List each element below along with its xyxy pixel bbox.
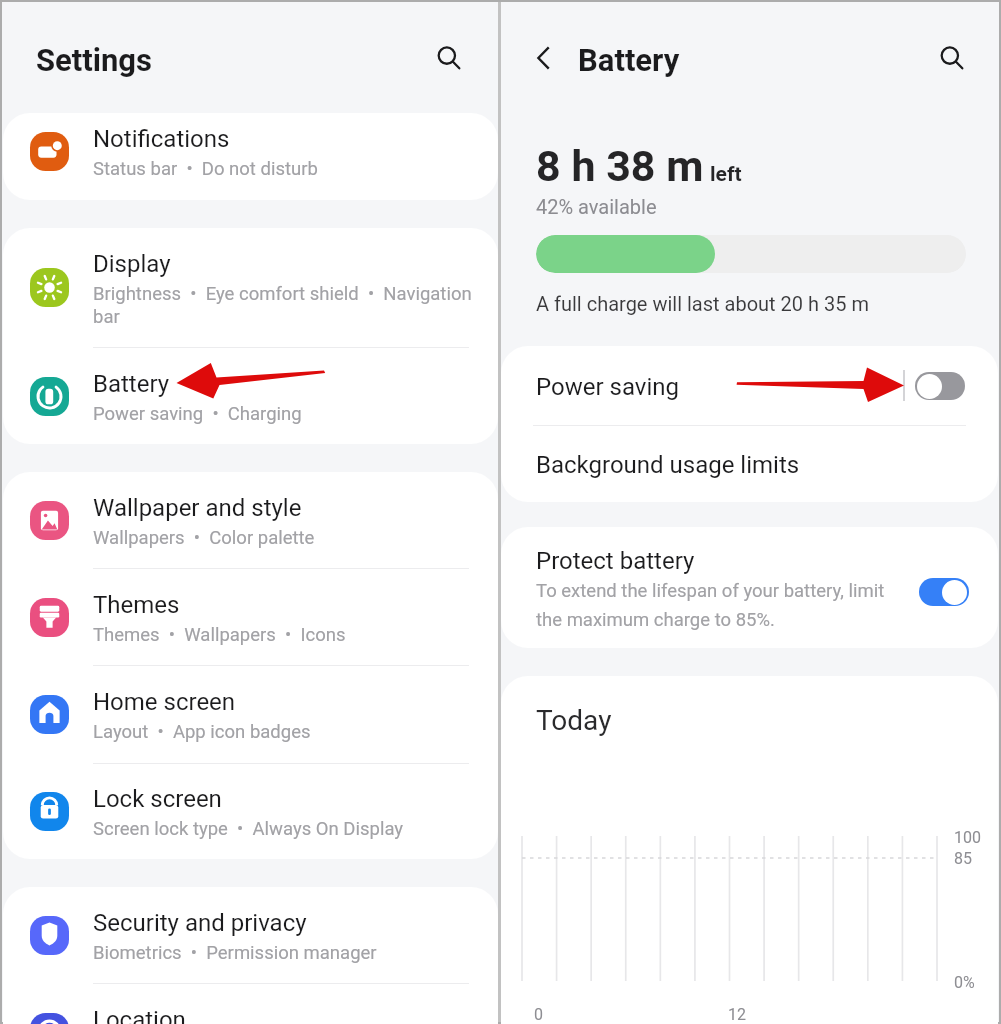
button[interactable]: Battery — [3, 348, 498, 444]
button[interactable]: Location — [3, 984, 498, 1024]
staticText: Notifications — [93, 125, 230, 153]
staticText: Display — [93, 250, 171, 278]
staticText: Themes — [93, 591, 180, 619]
button[interactable]: Wallpaper and style — [3, 472, 498, 568]
staticText: A full charge will last about 20 h 35 m — [536, 292, 870, 315]
staticText: 0% — [954, 973, 975, 992]
staticText: 85 — [954, 849, 972, 868]
staticText: Security and privacy — [93, 909, 307, 937]
staticText: Layout • App icon badges — [93, 721, 311, 743]
button[interactable]: Back — [521, 35, 567, 81]
staticText: Power saving — [536, 373, 679, 401]
button[interactable]: Home screen — [3, 666, 498, 763]
button[interactable]: Search — [929, 35, 975, 81]
staticText: Background usage limits — [536, 451, 800, 479]
staticText: Screen lock type • Always On Display — [93, 818, 404, 840]
staticText: left — [710, 162, 742, 187]
staticText: Location — [93, 1006, 186, 1024]
staticText: Status bar • Do not disturb — [93, 158, 318, 180]
staticText: Battery — [578, 42, 680, 78]
button[interactable]: Search — [426, 35, 472, 81]
button[interactable]: Background usage limits — [501, 426, 998, 502]
staticText: Wallpapers • Color palette — [93, 527, 315, 549]
button[interactable]: Turn off — [919, 578, 969, 606]
button[interactable]: Power saving — [501, 346, 998, 425]
staticText: Protect battery — [536, 547, 695, 575]
staticText: 42% available — [536, 195, 657, 218]
staticText: 100 — [954, 828, 981, 847]
button[interactable]: Lock screen — [3, 764, 498, 859]
staticText: Wallpaper and style — [93, 494, 302, 522]
button[interactable]: Security and privacy — [3, 887, 498, 983]
staticText: To extend the lifespan of your battery, … — [536, 580, 885, 630]
button[interactable]: Turn on — [915, 372, 965, 400]
button[interactable]: Display — [3, 228, 498, 347]
staticText: Today — [536, 704, 612, 737]
staticText: Home screen — [93, 688, 236, 716]
staticText: Biometrics • Permission manager — [93, 942, 377, 964]
staticText: Settings — [36, 42, 153, 78]
staticText: 0 — [534, 1005, 543, 1024]
staticText: Brightness • Eye comfort shield • Naviga… — [93, 283, 472, 328]
staticText: Lock screen — [93, 785, 222, 813]
staticText: Battery — [93, 370, 170, 398]
staticText: 12 — [728, 1005, 746, 1024]
staticText: 8 h 38 m — [536, 141, 704, 191]
staticText: Themes • Wallpapers • Icons — [93, 624, 346, 646]
button[interactable]: Notifications — [3, 113, 498, 200]
button[interactable]: Protect battery — [501, 527, 998, 648]
button[interactable]: Themes — [3, 569, 498, 665]
staticText: Power saving • Charging — [93, 403, 302, 425]
